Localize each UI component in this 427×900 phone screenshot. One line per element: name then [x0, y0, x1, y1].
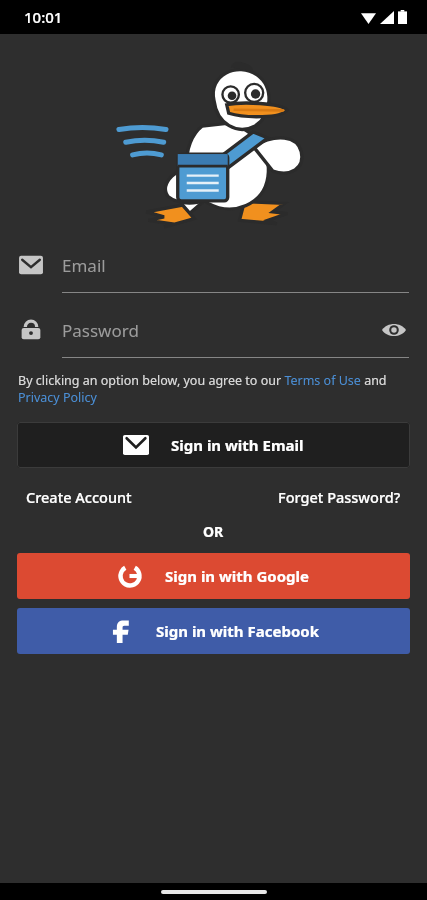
staticText: Create Account [26, 487, 132, 507]
button[interactable]: Sign in with Email [17, 422, 410, 468]
button[interactable]: Create Account [16, 481, 142, 513]
staticText: Sign in with Facebook [156, 621, 319, 641]
staticText: Sign in with Google [165, 566, 310, 586]
staticText: OR [203, 522, 224, 541]
staticText: Sign in with Email [171, 435, 304, 455]
staticText: 10:01 [24, 7, 63, 27]
button[interactable]: Forget Password? [268, 481, 411, 513]
staticText: Email [62, 254, 106, 277]
staticText: By clicking an option below, you agree t… [18, 372, 409, 406]
button[interactable]: Sign in with Google [17, 553, 410, 599]
button[interactable]: By clicking an option below, you agree t… [18, 372, 409, 406]
button[interactable]: Sign in with Facebook [17, 608, 410, 654]
staticText: Password [62, 319, 139, 342]
staticText: Forget Password? [278, 487, 401, 507]
button[interactable]: Show password [379, 315, 409, 345]
